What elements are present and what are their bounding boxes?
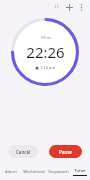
button[interactable]: Worldclock [21,164,46,180]
staticText: 1:16 pm [40,65,56,70]
staticText: 50 m [41,35,51,40]
staticText: Timer [74,168,86,174]
button[interactable]: Keypad [52,2,63,13]
button[interactable]: Alarm [0,164,21,180]
button[interactable]: Stopwatch [46,164,70,180]
staticText: Pause [59,149,72,155]
button[interactable]: Add timer [64,2,75,13]
button[interactable]: Cancel [8,145,38,158]
staticText: 22:26 [26,42,65,62]
button[interactable]: Pause [49,145,82,158]
staticText: Worldclock [23,169,45,175]
button[interactable]: Timer [70,164,90,180]
staticText: Alarm [5,169,17,175]
staticText: Stopwatch [48,169,69,175]
staticText: Cancel [16,149,31,155]
button[interactable]: More options [76,2,87,13]
